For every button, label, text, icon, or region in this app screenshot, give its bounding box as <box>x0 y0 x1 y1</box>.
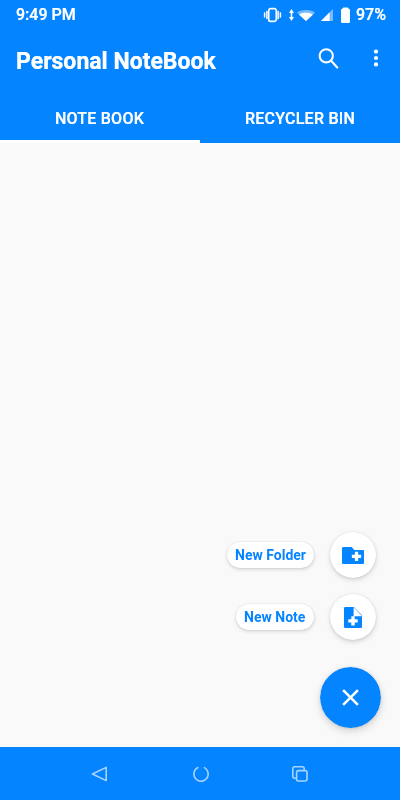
staticText: 97% <box>356 5 386 24</box>
staticText: NOTE BOOK <box>55 109 145 128</box>
button[interactable]: New Note <box>330 594 376 640</box>
button[interactable]: Search <box>304 34 352 82</box>
button[interactable]: Home <box>176 749 225 798</box>
button[interactable]: New Note <box>236 604 314 630</box>
button[interactable]: New Folder <box>330 532 376 578</box>
staticText: RECYCLER BIN <box>245 109 356 128</box>
button[interactable]: Recent apps <box>275 749 324 798</box>
staticText: New Note <box>244 609 306 625</box>
staticText: Personal NoteBook <box>16 48 216 75</box>
button[interactable]: New Folder <box>227 542 314 568</box>
button[interactable]: NOTE BOOK <box>0 88 200 143</box>
staticText: New Folder <box>235 547 306 563</box>
button[interactable]: Back <box>74 749 123 798</box>
button[interactable]: RECYCLER BIN <box>200 88 400 143</box>
button[interactable]: Close actions menu <box>320 667 381 728</box>
staticText: 9:49 PM <box>16 5 76 24</box>
button[interactable]: More options <box>352 34 400 82</box>
